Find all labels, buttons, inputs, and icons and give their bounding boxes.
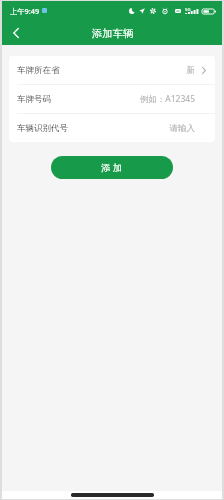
staticText: 车牌所在省 — [17, 65, 60, 76]
button[interactable]: 添 加 — [51, 156, 173, 179]
staticText: 请输入 — [169, 123, 195, 134]
staticText: 车牌号码 — [17, 94, 51, 105]
button[interactable]: 车牌所在省 — [9, 56, 215, 84]
button[interactable]: 车牌号码 — [9, 85, 215, 113]
staticText: 新 — [186, 65, 195, 76]
staticText: 添 加 — [101, 161, 123, 174]
staticText: 添加车辆 — [92, 27, 134, 40]
button[interactable]: 车辆识别代号 — [9, 114, 215, 142]
staticText: 车辆识别代号 — [17, 123, 68, 134]
staticText: 例如：A12345 — [139, 93, 195, 105]
button[interactable]: Back — [2, 20, 29, 45]
staticText: 5G — [185, 7, 191, 13]
staticText: 上午9:49 — [10, 6, 40, 16]
